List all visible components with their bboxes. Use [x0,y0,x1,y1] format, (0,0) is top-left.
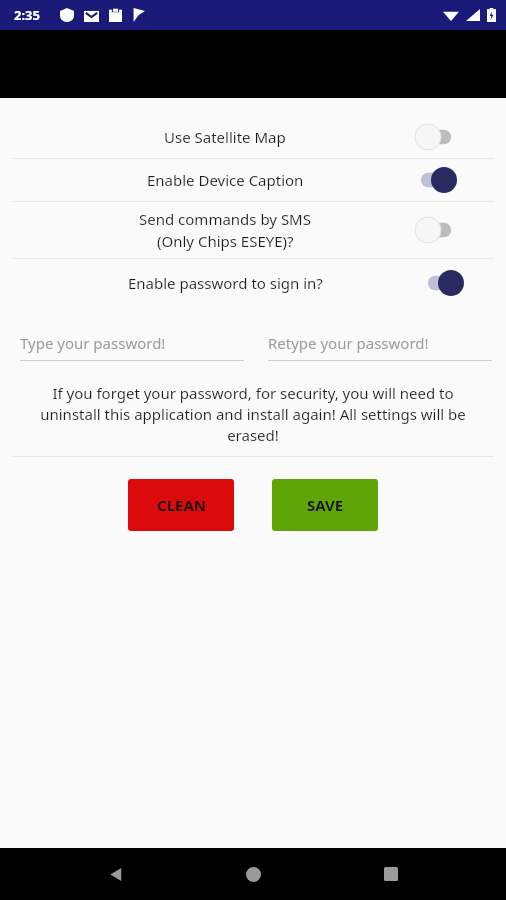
staticText: Type your password! [20,333,166,353]
button[interactable]: Home [231,852,275,896]
button[interactable]: Recent apps [369,852,413,896]
button[interactable]: Type your password! [14,333,244,361]
button[interactable]: Use Satellite Map [0,116,506,158]
staticText: Enable Device Caption [147,170,304,190]
button[interactable]: SAVE [272,479,378,531]
staticText: CLEAN [157,495,206,515]
button[interactable]: Send commands by SMS [414,216,458,244]
button[interactable]: Enable password to sign in? [421,269,465,297]
button[interactable]: Send commands by SMS [0,202,506,258]
button[interactable]: CLEAN [128,479,234,531]
staticText: If you forget your password, for securit… [22,383,484,446]
staticText: SAVE [307,495,344,515]
button[interactable]: Back [94,852,138,896]
staticText: (Only Chips ESEYE)? [157,231,294,251]
staticText: 2:35 [14,6,40,24]
button[interactable]: Enable password to sign in? [0,259,506,307]
button[interactable]: Retype your password! [262,333,492,361]
staticText: Retype your password! [268,333,429,353]
staticText: Send commands by SMS [139,209,311,229]
button[interactable]: Enable Device Caption [414,166,458,194]
button[interactable]: Use Satellite Map [414,123,458,151]
staticText: Enable password to sign in? [128,273,323,293]
staticText: Use Satellite Map [164,127,286,147]
button[interactable]: Enable Device Caption [0,159,506,201]
